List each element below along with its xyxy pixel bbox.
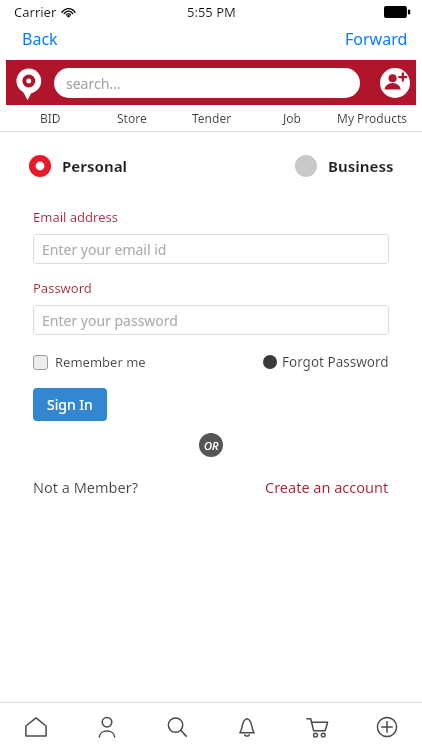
staticText: 5:55 PM	[187, 3, 236, 21]
button[interactable]: Create an account	[265, 477, 389, 497]
button[interactable]: search...	[54, 68, 360, 98]
button[interactable]: Add	[352, 703, 422, 750]
button[interactable]: Tender	[172, 110, 252, 126]
button[interactable]: Not a Member?	[33, 477, 138, 497]
staticText: BID	[40, 110, 61, 126]
button[interactable]: Add user account	[380, 68, 410, 98]
staticText: Business	[328, 156, 394, 176]
staticText: My Products	[337, 110, 407, 126]
button[interactable]: Profile	[71, 703, 142, 750]
button[interactable]: Back	[0, 25, 80, 53]
staticText: Back	[22, 28, 58, 50]
staticText: Tender	[192, 110, 232, 126]
button[interactable]: Enter your password	[33, 305, 389, 335]
button[interactable]: Job	[252, 110, 332, 126]
staticText: Sign In	[47, 395, 93, 414]
button[interactable]: Search	[142, 703, 212, 750]
staticText: Not a Member?	[33, 477, 138, 497]
staticText: Forgot Password	[282, 353, 389, 371]
staticText: Enter your email id	[42, 240, 167, 259]
staticText: OR	[204, 438, 219, 453]
button[interactable]: Personal	[28, 154, 128, 178]
staticText: Create an account	[265, 477, 389, 497]
button[interactable]: Business	[294, 154, 394, 178]
button[interactable]: Sign In	[33, 388, 107, 421]
staticText: Carrier	[14, 3, 57, 21]
staticText: Forward	[345, 28, 408, 50]
staticText: Email address	[33, 208, 118, 226]
staticText: Password	[33, 279, 92, 297]
button[interactable]: Cart	[282, 703, 352, 750]
staticText: Job	[283, 110, 301, 126]
staticText: Enter your password	[42, 311, 178, 330]
button[interactable]: Forward	[331, 25, 422, 53]
button[interactable]: Home	[0, 703, 71, 750]
staticText: search...	[66, 74, 121, 93]
button[interactable]: Forgot Password	[263, 353, 389, 371]
button[interactable]: BID	[10, 110, 91, 126]
button[interactable]: My Products	[332, 110, 412, 126]
button[interactable]: Notifications	[212, 703, 282, 750]
staticText: Store	[117, 110, 147, 126]
button[interactable]: Store	[91, 110, 172, 126]
button[interactable]: Remember me	[33, 353, 146, 371]
button[interactable]: Enter your email id	[33, 234, 389, 264]
staticText: Personal	[62, 156, 128, 176]
button[interactable]: Home logo	[10, 63, 50, 103]
staticText: Remember me	[55, 353, 146, 371]
